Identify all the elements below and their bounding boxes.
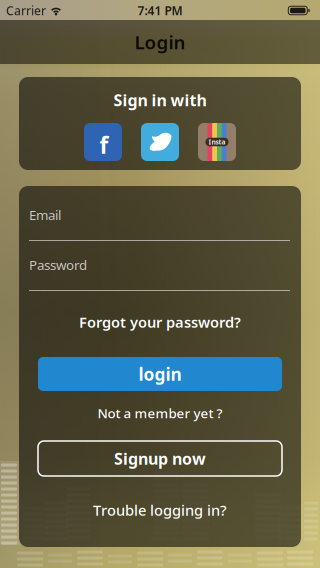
button[interactable]: f: [84, 123, 122, 161]
staticText: Password: [29, 256, 87, 274]
staticText: Sign in with: [113, 89, 206, 111]
button[interactable]: Insta: [198, 123, 236, 161]
staticText: Email: [29, 206, 61, 224]
button[interactable]: Password: [19, 254, 301, 292]
button[interactable]: Forgot your password?: [19, 311, 301, 333]
staticText: Not a member yet ?: [97, 404, 222, 422]
staticText: f: [99, 130, 108, 160]
button[interactable]: [141, 123, 179, 161]
staticText: 7:41 PM: [137, 2, 182, 18]
staticText: Login: [134, 30, 185, 54]
staticText: Trouble logging in?: [93, 500, 227, 520]
staticText: Carrier: [6, 2, 46, 18]
staticText: Insta: [208, 138, 225, 146]
staticText: Forgot your password?: [79, 312, 241, 332]
button[interactable]: login: [38, 357, 282, 391]
button[interactable]: Email: [19, 204, 301, 242]
staticText: login: [138, 362, 181, 385]
button[interactable]: Signup now: [38, 441, 282, 476]
staticText: Signup now: [114, 448, 206, 469]
button[interactable]: Trouble logging in?: [19, 499, 301, 521]
